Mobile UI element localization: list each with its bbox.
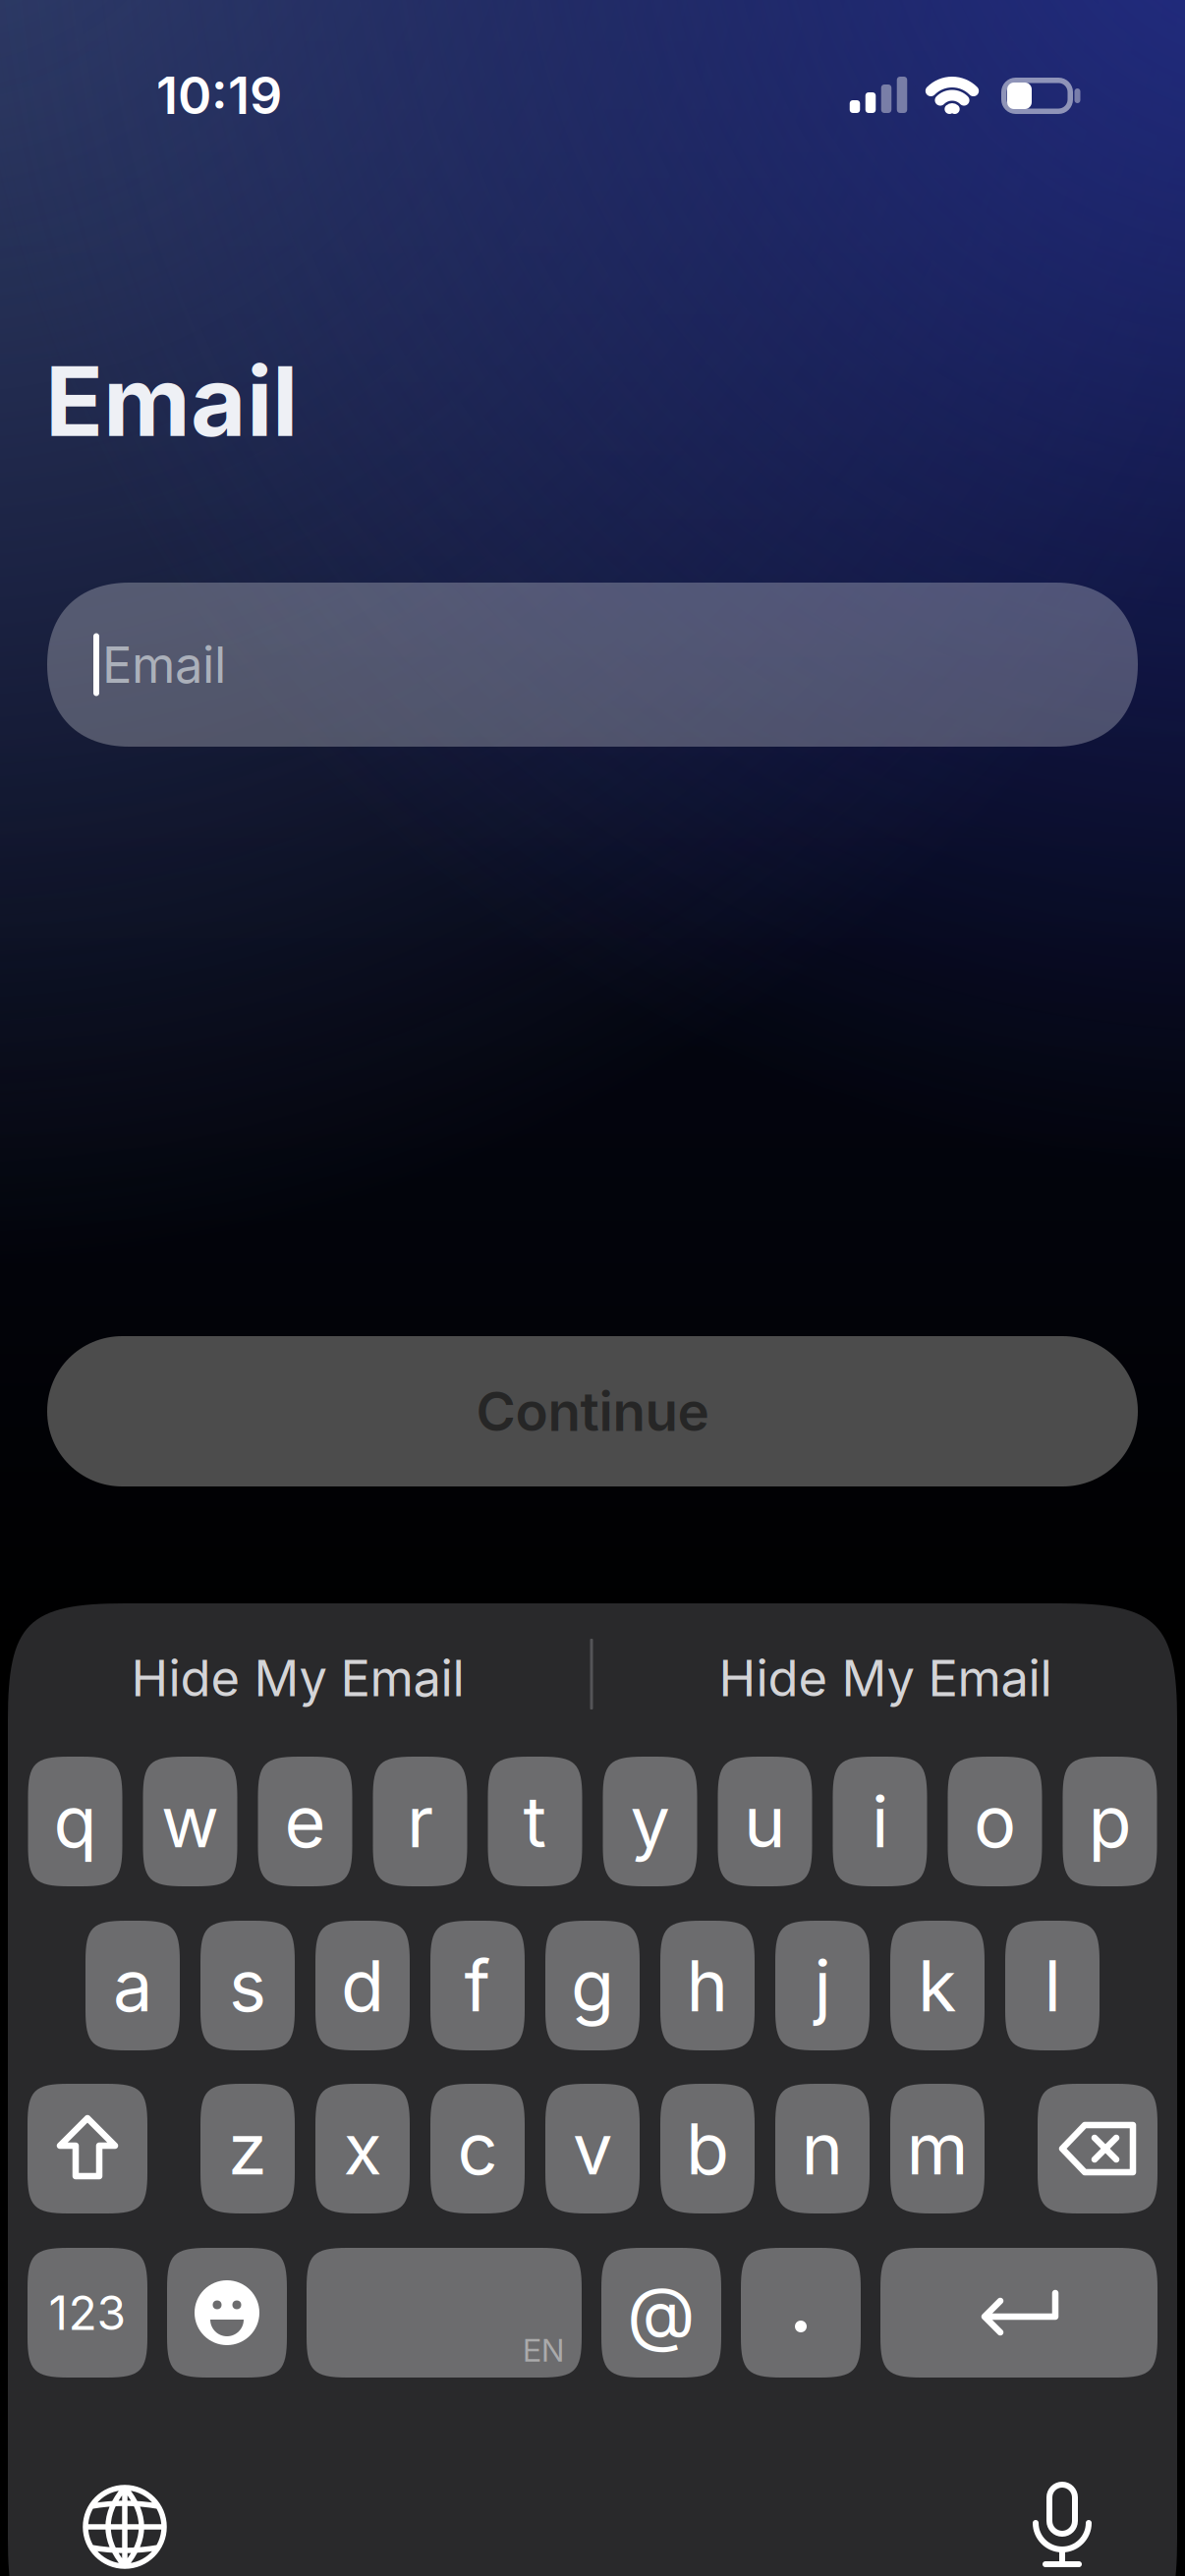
button[interactable]: j bbox=[775, 1921, 870, 2050]
staticText: j bbox=[814, 1944, 831, 2027]
button[interactable]: h bbox=[660, 1921, 755, 2050]
button[interactable]: q bbox=[28, 1757, 122, 1886]
button[interactable]: t bbox=[488, 1757, 582, 1886]
staticText: d bbox=[341, 1944, 384, 2027]
staticText: k bbox=[918, 1944, 957, 2027]
staticText: a bbox=[113, 1944, 152, 2027]
button[interactable]: u bbox=[718, 1757, 812, 1886]
staticText: n bbox=[801, 2107, 844, 2190]
button[interactable]: p bbox=[1063, 1757, 1157, 1886]
staticText: r bbox=[407, 1780, 433, 1863]
staticText: o bbox=[974, 1780, 1016, 1863]
button[interactable]: g bbox=[545, 1921, 640, 2050]
staticText: 123 bbox=[49, 2285, 126, 2341]
button[interactable]: b bbox=[660, 2084, 755, 2213]
staticText: i bbox=[872, 1780, 888, 1863]
staticText: g bbox=[571, 1944, 614, 2027]
staticText: EN bbox=[523, 2332, 564, 2369]
button[interactable]: k bbox=[890, 1921, 985, 2050]
staticText: 10:19 bbox=[156, 65, 282, 125]
button[interactable]: a bbox=[85, 1921, 180, 2050]
button[interactable]: n bbox=[775, 2084, 870, 2213]
staticText: p bbox=[1088, 1780, 1131, 1863]
staticText: @ bbox=[627, 2271, 696, 2354]
button[interactable]: Period bbox=[741, 2248, 861, 2378]
button[interactable]: d bbox=[315, 1921, 410, 2050]
button[interactable]: o bbox=[948, 1757, 1042, 1886]
button[interactable]: Numbers bbox=[28, 2248, 147, 2378]
staticText: l bbox=[1044, 1944, 1061, 2027]
button[interactable]: f bbox=[430, 1921, 525, 2050]
button[interactable]: Hide My Email bbox=[23, 1614, 573, 1742]
staticText: v bbox=[573, 2107, 612, 2190]
button[interactable]: Emoji bbox=[167, 2248, 287, 2378]
staticText: s bbox=[229, 1944, 266, 2027]
button[interactable]: Delete bbox=[1038, 2084, 1157, 2213]
staticText: Continue bbox=[476, 1380, 709, 1443]
button[interactable]: @ bbox=[601, 2248, 721, 2378]
staticText: c bbox=[457, 2107, 498, 2190]
button[interactable]: Hide My Email bbox=[610, 1614, 1160, 1742]
staticText: u bbox=[744, 1780, 786, 1863]
button[interactable]: s bbox=[200, 1921, 295, 2050]
staticText: Hide My Email bbox=[131, 1649, 464, 1707]
staticText: Email bbox=[102, 635, 226, 694]
staticText: t bbox=[523, 1780, 547, 1863]
button[interactable]: c bbox=[430, 2084, 525, 2213]
staticText: f bbox=[464, 1944, 491, 2027]
button[interactable]: Email bbox=[47, 583, 1138, 747]
staticText: m bbox=[906, 2107, 968, 2190]
button[interactable]: m bbox=[890, 2084, 985, 2213]
staticText: e bbox=[284, 1780, 326, 1863]
button[interactable]: i bbox=[833, 1757, 927, 1886]
staticText: b bbox=[686, 2107, 729, 2190]
button[interactable]: x bbox=[315, 2084, 410, 2213]
button[interactable]: e bbox=[258, 1757, 352, 1886]
staticText: Email bbox=[45, 345, 298, 458]
staticText: Hide My Email bbox=[719, 1649, 1052, 1707]
button[interactable]: l bbox=[1005, 1921, 1100, 2050]
button[interactable]: Continue bbox=[47, 1336, 1138, 1486]
button[interactable]: Return bbox=[880, 2248, 1157, 2378]
button[interactable]: v bbox=[545, 2084, 640, 2213]
button[interactable]: r bbox=[373, 1757, 467, 1886]
button[interactable]: Space bbox=[307, 2248, 582, 2378]
button[interactable]: z bbox=[200, 2084, 295, 2213]
staticText: w bbox=[161, 1780, 219, 1863]
button[interactable]: w bbox=[143, 1757, 237, 1886]
staticText: h bbox=[686, 1944, 729, 2027]
staticText: z bbox=[228, 2107, 267, 2190]
staticText: y bbox=[630, 1780, 670, 1863]
button[interactable]: Dictate bbox=[1015, 2480, 1109, 2574]
staticText: x bbox=[343, 2107, 382, 2190]
button[interactable]: y bbox=[603, 1757, 697, 1886]
button[interactable]: Shift bbox=[28, 2084, 147, 2213]
staticText: q bbox=[54, 1780, 97, 1863]
button[interactable]: Next keyboard bbox=[78, 2480, 172, 2574]
